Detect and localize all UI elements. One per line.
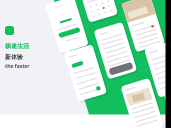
staticText: the faster: [5, 63, 30, 70]
button[interactable]: App icon: [5, 26, 14, 35]
staticText: 新体验: [5, 53, 23, 61]
staticText: 极速生活: [5, 42, 29, 50]
